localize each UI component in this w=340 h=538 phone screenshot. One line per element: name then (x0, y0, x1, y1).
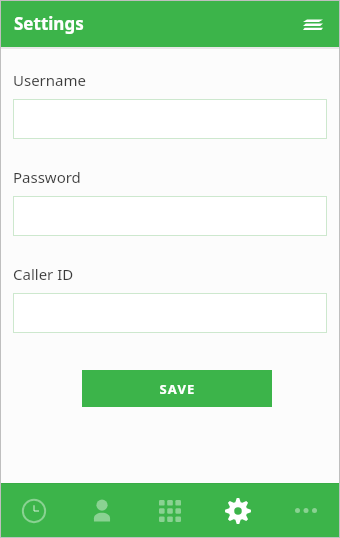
button[interactable]: Recents (0, 483, 68, 538)
button[interactable]: Dialpad (136, 483, 204, 538)
button[interactable]: Contacts (68, 483, 136, 538)
button[interactable]: SAVE (82, 370, 272, 407)
button[interactable] (13, 196, 327, 236)
button[interactable]: Settings (204, 483, 272, 538)
button[interactable]: More options (272, 483, 340, 538)
staticText: Settings (14, 12, 84, 35)
button[interactable] (13, 99, 327, 139)
button[interactable]: Menu (296, 7, 330, 41)
staticText: SAVE (159, 380, 196, 398)
button[interactable] (13, 293, 327, 333)
button[interactable]: Settings (0, 0, 340, 47)
staticText: Username (13, 70, 86, 90)
staticText: Password (13, 167, 81, 187)
staticText: Caller ID (13, 264, 74, 284)
